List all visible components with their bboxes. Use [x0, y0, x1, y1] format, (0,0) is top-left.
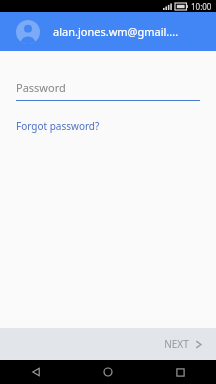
button[interactable]: NEXT [150, 328, 216, 360]
button[interactable]: Password [16, 80, 200, 101]
button[interactable]: Forgot password? [16, 119, 100, 133]
staticText: NEXT [164, 337, 189, 351]
button[interactable]: alan.jones.wm@gmail.... [0, 12, 216, 51]
staticText: Password [16, 80, 66, 95]
button[interactable]: Back [0, 360, 72, 384]
staticText: 10:00 [191, 1, 212, 12]
button[interactable]: Recent apps [144, 360, 216, 384]
button[interactable]: Home [72, 360, 144, 384]
staticText: Forgot password? [16, 119, 100, 133]
staticText: alan.jones.wm@gmail.... [53, 24, 179, 39]
